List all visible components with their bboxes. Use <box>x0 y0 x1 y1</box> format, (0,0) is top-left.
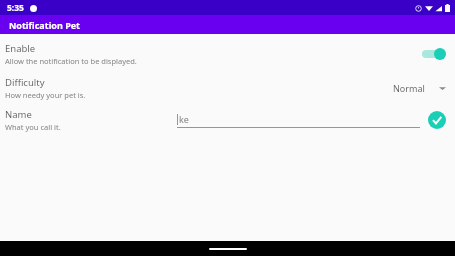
button[interactable]: Name <box>0 106 455 134</box>
staticText: Allow the notification to be displayed. <box>5 56 137 66</box>
staticText: Normal <box>393 82 425 94</box>
staticText: 5:35 <box>7 2 24 14</box>
button[interactable]: ke <box>175 113 428 128</box>
staticText: Notification Pet <box>9 19 81 31</box>
staticText: Name <box>5 108 32 121</box>
button[interactable]: Enable <box>0 40 455 68</box>
staticText: What you call it. <box>5 122 61 132</box>
staticText: Difficulty <box>5 76 45 89</box>
staticText: Enable <box>5 42 36 55</box>
staticText: How needy your pet is. <box>5 90 86 100</box>
button[interactable]: Enable notification toggle <box>418 44 450 64</box>
button[interactable]: Confirm name <box>428 111 450 129</box>
staticText: ke <box>179 113 189 125</box>
button[interactable]: Normal <box>389 78 450 98</box>
button[interactable]: Difficulty <box>0 74 455 102</box>
